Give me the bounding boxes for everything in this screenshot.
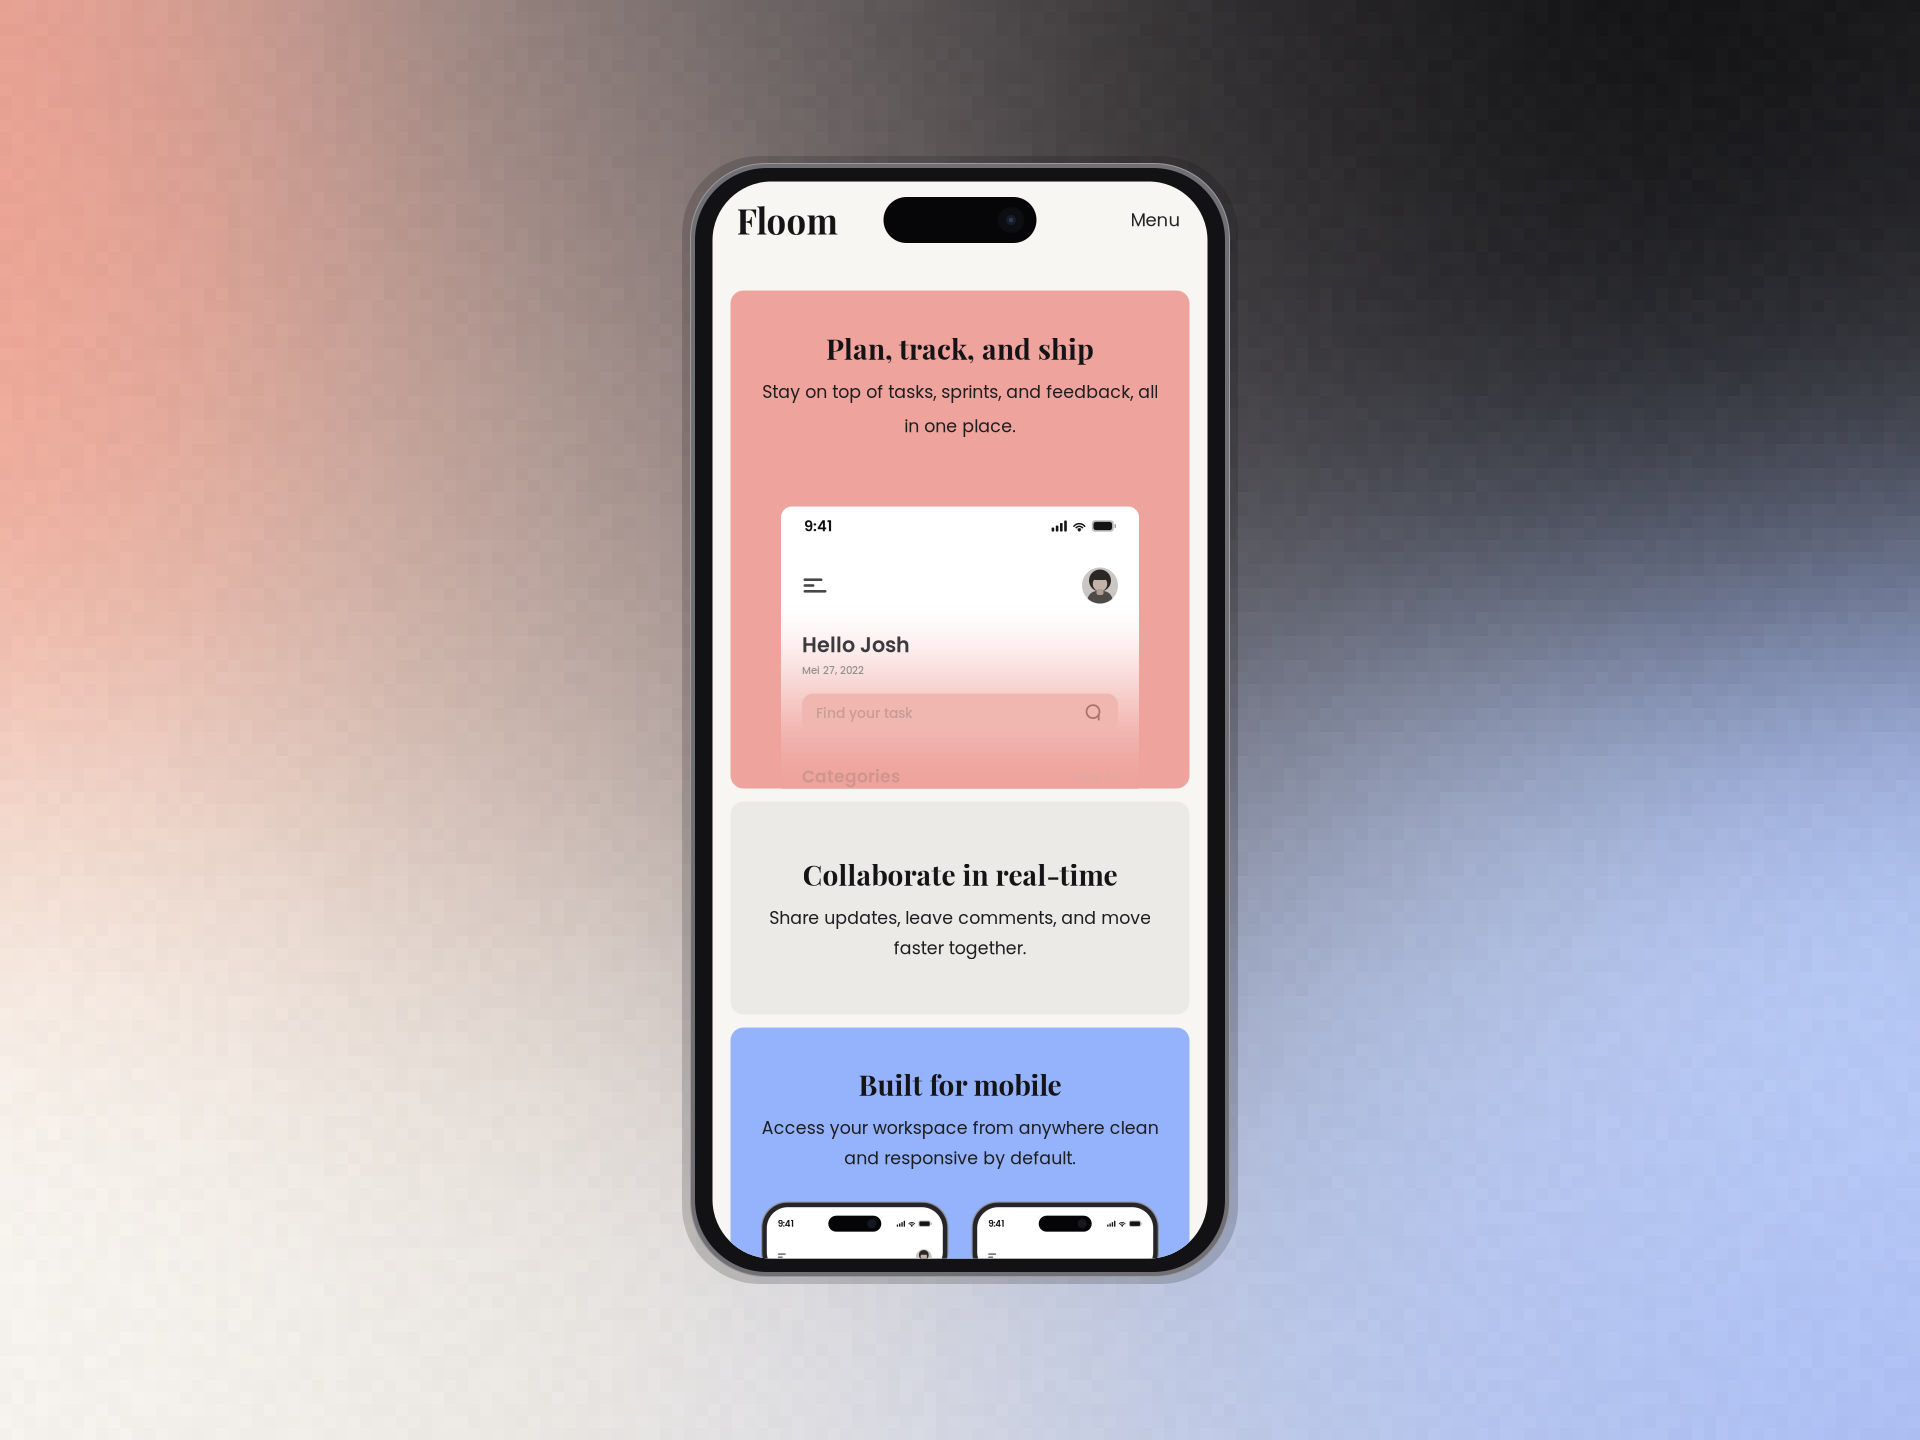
staticText: Menu bbox=[1130, 207, 1180, 233]
staticText: Mei 27, 2022 bbox=[802, 663, 864, 678]
staticText: View All bbox=[1073, 768, 1118, 785]
staticText: 9:41 bbox=[988, 1218, 1004, 1230]
button[interactable]: Plan, track, and ship bbox=[730, 290, 1189, 788]
staticText: Collaborate in real-time bbox=[802, 856, 1117, 893]
button[interactable]: Menu bbox=[802, 576, 828, 594]
button[interactable]: Profile bbox=[1082, 567, 1118, 603]
button[interactable]: View All bbox=[1073, 768, 1118, 785]
staticText: Access your workspace from anywhere clea… bbox=[761, 1116, 1158, 1170]
staticText: Find your task bbox=[816, 703, 913, 723]
button[interactable]: Menu bbox=[1130, 201, 1180, 239]
button[interactable]: Find your task bbox=[802, 694, 1118, 733]
staticText: Categories bbox=[802, 765, 900, 788]
staticText: Floom bbox=[736, 197, 837, 243]
staticText: Plan, track, and ship bbox=[826, 329, 1094, 367]
staticText: Stay on top of tasks, sprints, and feedb… bbox=[762, 380, 1158, 438]
staticText: Built for mobile bbox=[858, 1065, 1061, 1103]
staticText: 9:41 bbox=[804, 516, 832, 536]
button[interactable]: Collaborate in real-time bbox=[730, 801, 1189, 1014]
button[interactable]: Floom bbox=[736, 195, 837, 245]
staticText: Hello Josh bbox=[802, 630, 910, 659]
staticText: 9:41 bbox=[778, 1218, 794, 1230]
button[interactable]: Built for mobile bbox=[730, 1027, 1189, 1258]
staticText: Share updates, leave comments, and move … bbox=[769, 906, 1151, 960]
